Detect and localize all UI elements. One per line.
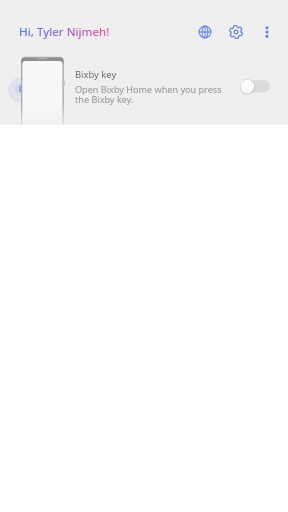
button[interactable]: More options — [255, 20, 279, 44]
button[interactable]: Settings — [224, 20, 248, 44]
staticText: Bixby key — [75, 68, 117, 81]
button[interactable]: Language — [193, 20, 217, 44]
staticText: Open Bixby Home when you press the Bixby… — [75, 83, 235, 106]
button[interactable]: Bixby key, off — [237, 76, 273, 97]
staticText: Hi, Tyler Nijmeh! — [19, 24, 110, 40]
